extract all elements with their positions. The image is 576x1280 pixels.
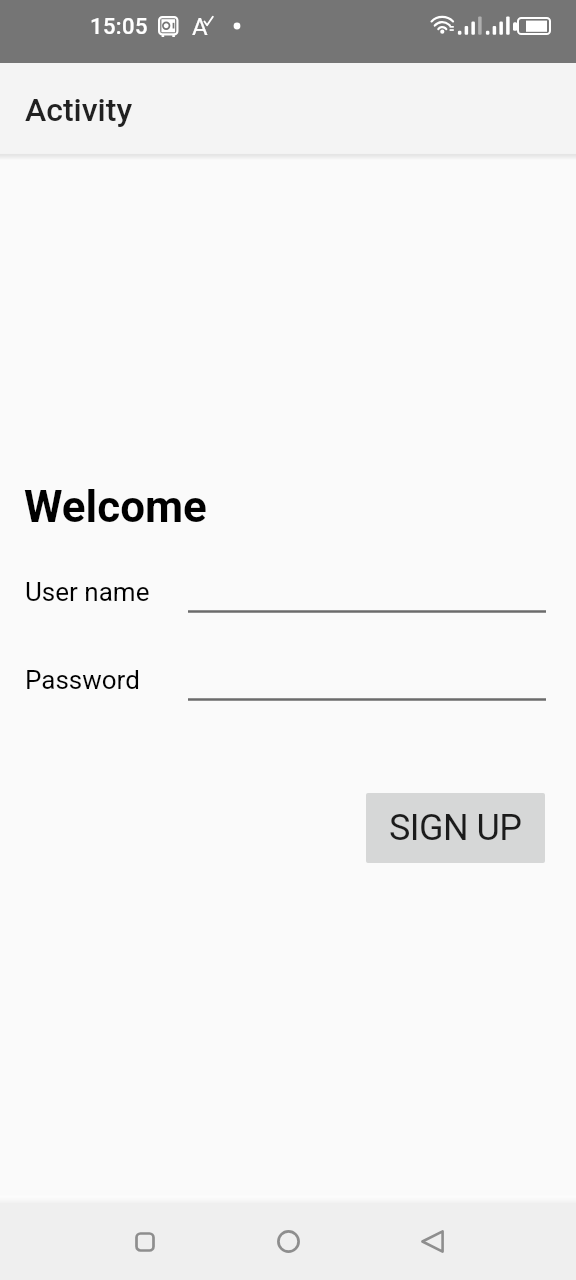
- staticText: User name: [25, 577, 150, 607]
- button[interactable]: Back: [396, 1203, 468, 1280]
- button[interactable]: Recent apps: [109, 1203, 181, 1280]
- staticText: Password: [25, 665, 140, 695]
- staticText: Welcome: [24, 481, 207, 533]
- staticText: A: [192, 13, 208, 41]
- button[interactable]: User name input field: [188, 572, 546, 614]
- button[interactable]: SIGN UP: [366, 793, 545, 863]
- staticText: SIGN UP: [389, 807, 522, 849]
- button[interactable]: Home: [252, 1203, 324, 1280]
- staticText: 15:05: [90, 14, 148, 40]
- button[interactable]: Password input field: [188, 660, 546, 702]
- staticText: Activity: [25, 91, 133, 129]
